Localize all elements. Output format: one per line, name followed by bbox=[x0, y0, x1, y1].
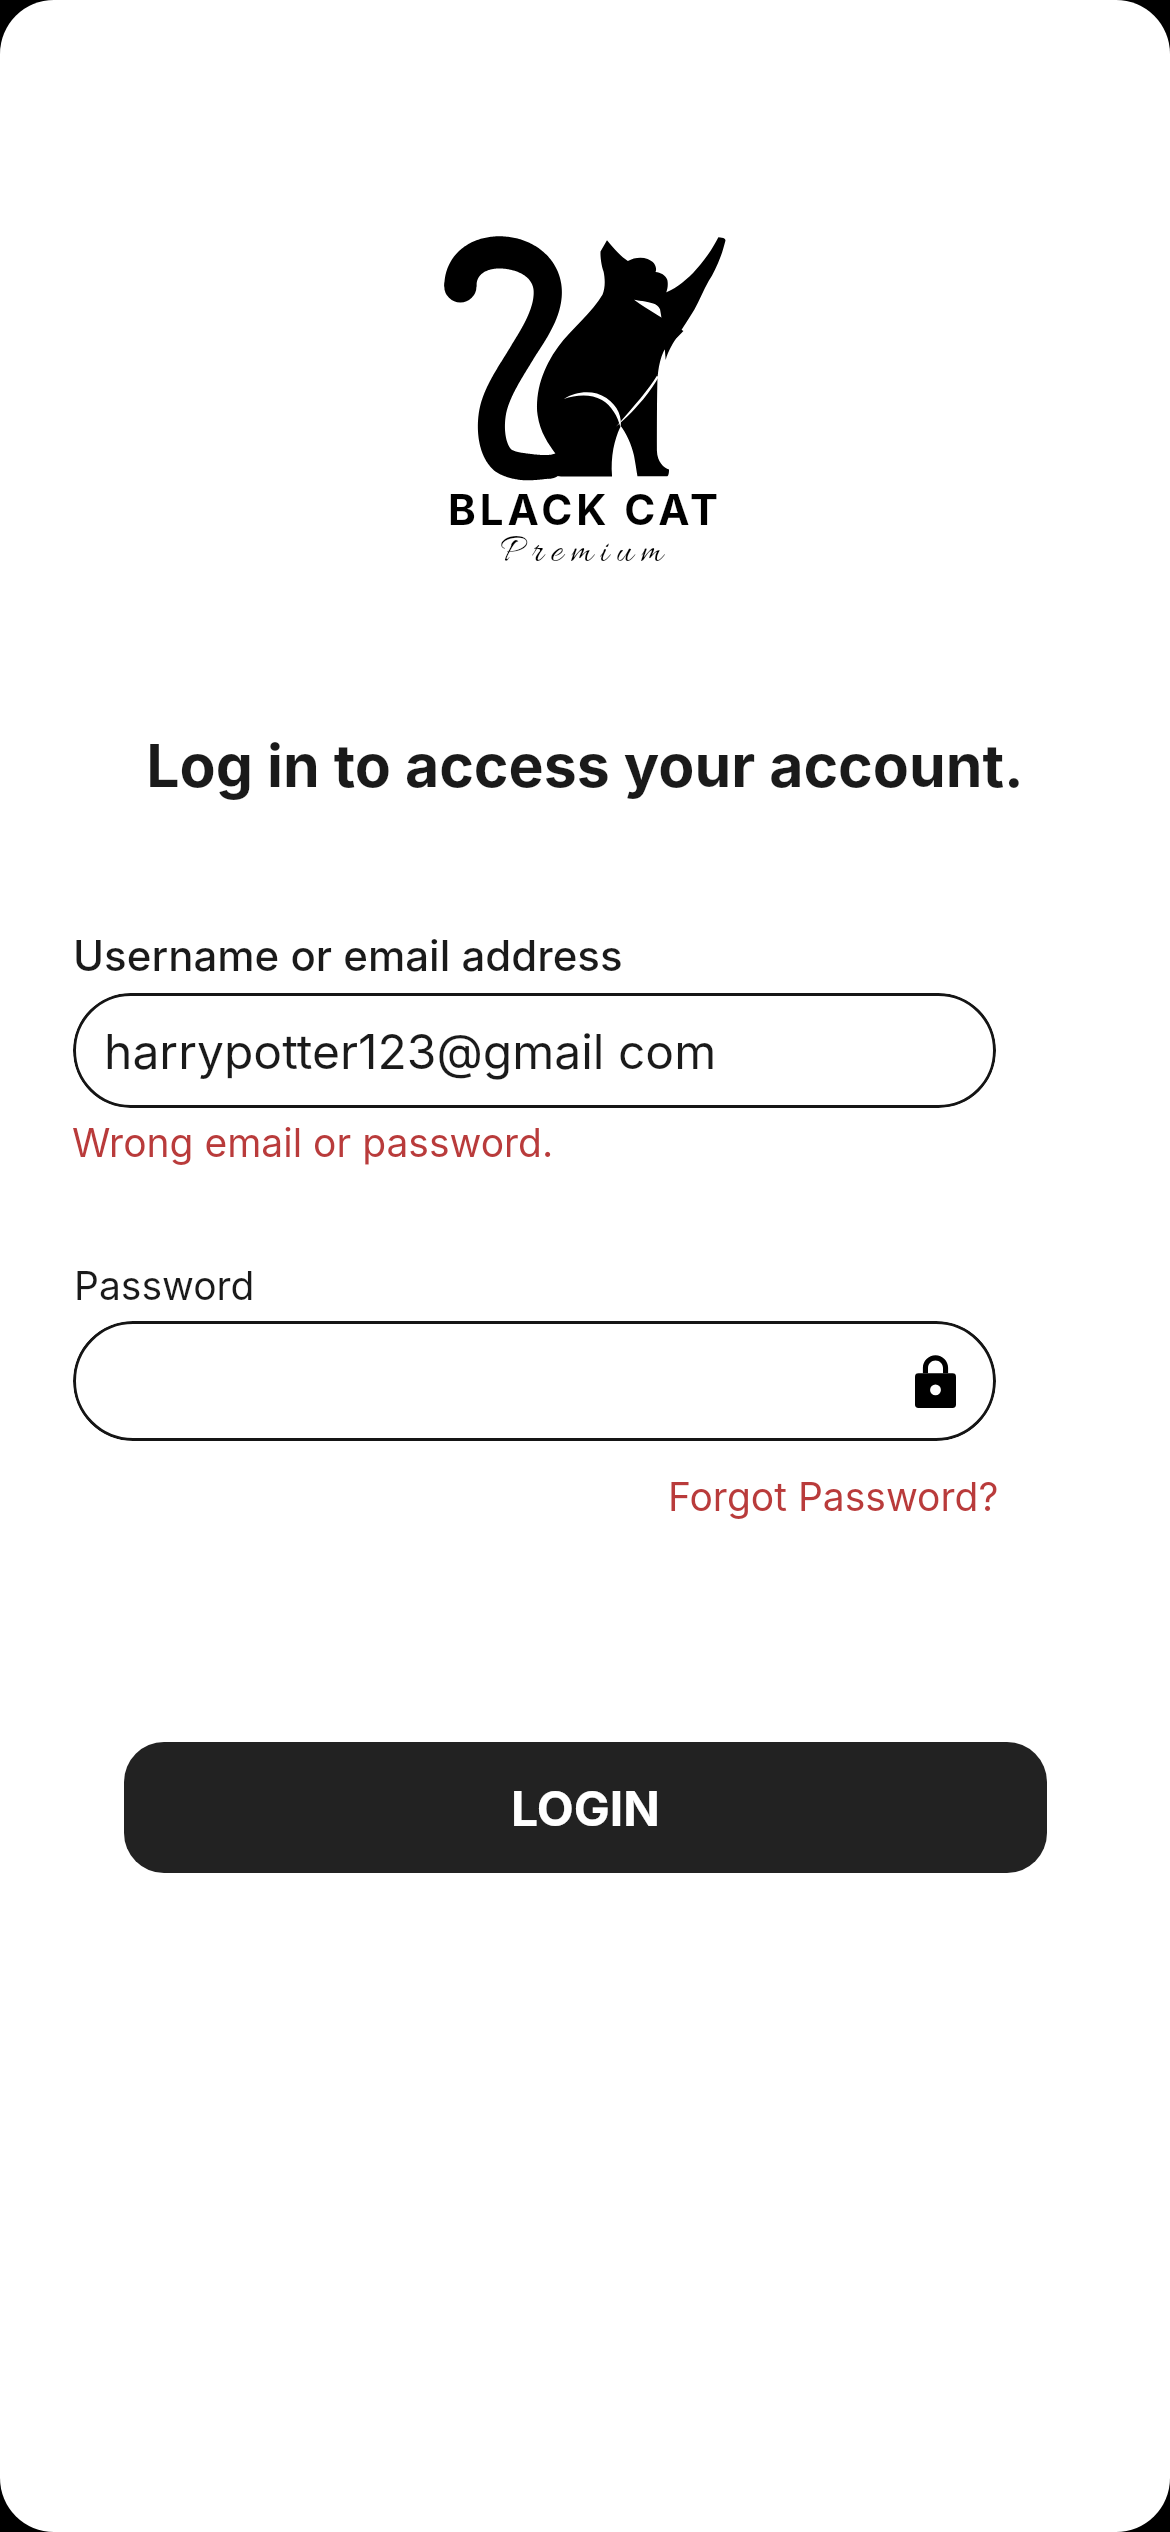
other: Show password bbox=[915, 1355, 956, 1408]
staticText: Wrong email or password. bbox=[72, 1119, 554, 1166]
button[interactable]: Forgot Password? bbox=[668, 1473, 999, 1520]
staticText: harrypotter123@gmail com bbox=[104, 1022, 717, 1080]
staticText: Username or email address bbox=[73, 930, 623, 981]
staticText: LOGIN bbox=[511, 1779, 660, 1837]
button[interactable]: Show password bbox=[73, 1321, 996, 1441]
staticText: Log in to access your account. bbox=[0, 730, 1170, 801]
staticText: Password bbox=[74, 1262, 255, 1309]
staticText: Premium bbox=[500, 530, 670, 578]
button[interactable]: harrypotter123@gmail com bbox=[73, 993, 996, 1108]
staticText: BLACK CAT bbox=[448, 484, 722, 535]
button[interactable]: LOGIN bbox=[124, 1742, 1047, 1873]
